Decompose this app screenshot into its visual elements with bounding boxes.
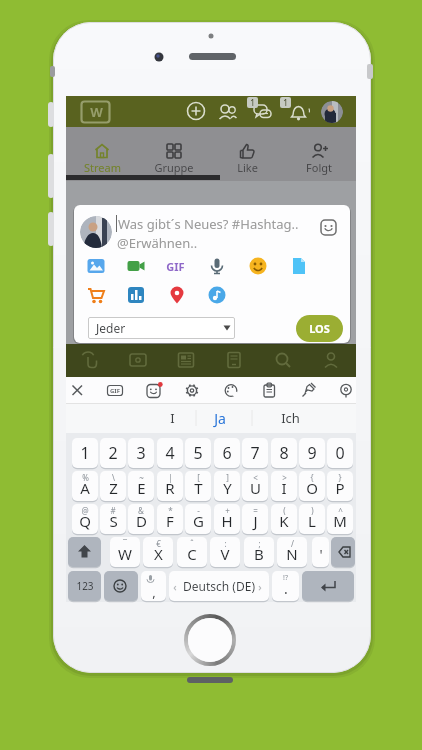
staticText: 0	[335, 442, 345, 464]
button[interactable]	[248, 256, 268, 276]
button[interactable]	[242, 504, 268, 534]
button[interactable]	[271, 438, 297, 468]
button[interactable]	[242, 471, 268, 501]
button[interactable]	[128, 438, 154, 468]
button[interactable]	[128, 504, 154, 534]
button[interactable]	[271, 471, 297, 501]
staticText: 5	[193, 442, 203, 464]
button[interactable]	[299, 471, 325, 501]
button[interactable]	[157, 438, 183, 468]
button[interactable]	[185, 438, 211, 468]
button[interactable]	[196, 403, 252, 433]
button[interactable]	[186, 101, 206, 121]
button[interactable]	[185, 615, 235, 665]
button[interactable]	[72, 504, 98, 534]
button[interactable]	[271, 504, 297, 534]
button[interactable]	[104, 571, 138, 601]
button[interactable]	[272, 571, 299, 601]
button[interactable]	[285, 127, 358, 181]
button[interactable]	[299, 438, 325, 468]
button[interactable]: LOS	[296, 315, 343, 342]
staticText: T	[194, 478, 203, 498]
button[interactable]	[336, 380, 356, 400]
button[interactable]	[327, 438, 353, 468]
staticText: P	[335, 478, 345, 498]
button[interactable]	[207, 256, 227, 276]
button[interactable]	[210, 537, 240, 567]
staticText: B	[254, 544, 264, 564]
button[interactable]	[214, 504, 240, 534]
button[interactable]	[139, 127, 212, 181]
button[interactable]	[214, 438, 240, 468]
button[interactable]	[321, 350, 341, 370]
button[interactable]	[207, 285, 227, 305]
staticText: +	[225, 505, 230, 516]
button[interactable]	[86, 256, 106, 276]
button[interactable]	[110, 537, 140, 567]
button[interactable]	[68, 571, 101, 601]
button[interactable]	[176, 350, 196, 370]
button[interactable]	[72, 438, 98, 468]
button[interactable]: GIF	[105, 380, 125, 400]
button[interactable]	[157, 504, 183, 534]
button[interactable]	[88, 317, 235, 339]
staticText: S	[109, 511, 118, 531]
button[interactable]	[80, 350, 100, 370]
button[interactable]	[299, 504, 325, 534]
button[interactable]	[126, 285, 146, 305]
button[interactable]	[289, 256, 309, 276]
button[interactable]	[182, 380, 202, 400]
button[interactable]	[185, 504, 211, 534]
staticText: 7	[250, 442, 260, 464]
staticText: GIF	[166, 259, 185, 274]
button[interactable]	[298, 380, 318, 400]
button[interactable]	[320, 219, 338, 237]
button[interactable]	[331, 537, 355, 567]
button[interactable]	[185, 471, 211, 501]
button[interactable]	[80, 216, 112, 248]
button[interactable]	[86, 285, 106, 305]
button[interactable]	[169, 571, 269, 601]
button[interactable]	[100, 438, 126, 468]
button[interactable]	[68, 537, 101, 567]
button[interactable]	[312, 537, 329, 567]
button[interactable]	[157, 471, 183, 501]
button[interactable]	[144, 380, 164, 400]
button[interactable]	[167, 285, 187, 305]
button[interactable]	[143, 537, 173, 567]
button[interactable]	[100, 504, 126, 534]
button[interactable]	[242, 438, 268, 468]
button[interactable]	[302, 571, 354, 601]
button[interactable]	[72, 471, 98, 501]
button[interactable]	[66, 127, 139, 181]
button[interactable]	[259, 380, 279, 400]
button[interactable]	[67, 380, 87, 400]
staticText: GIF	[110, 387, 120, 395]
button[interactable]	[327, 471, 353, 501]
button[interactable]	[321, 101, 343, 123]
button[interactable]: GIF	[167, 256, 187, 276]
button[interactable]	[132, 403, 196, 433]
button[interactable]	[126, 256, 146, 276]
button[interactable]	[218, 102, 238, 122]
button[interactable]	[244, 537, 274, 567]
button[interactable]: W	[80, 100, 112, 125]
button[interactable]	[251, 101, 273, 121]
button[interactable]	[214, 471, 240, 501]
button[interactable]	[177, 537, 207, 567]
staticText: }	[338, 472, 342, 483]
button[interactable]	[212, 127, 285, 181]
button[interactable]	[327, 504, 353, 534]
button[interactable]	[221, 380, 241, 400]
button[interactable]	[100, 471, 126, 501]
button[interactable]	[224, 350, 244, 370]
button[interactable]	[277, 537, 307, 567]
staticText: [	[197, 472, 200, 483]
button[interactable]	[273, 350, 293, 370]
staticText: G	[193, 511, 204, 531]
button[interactable]	[141, 571, 166, 601]
button[interactable]	[252, 403, 332, 433]
button[interactable]	[128, 471, 154, 501]
button[interactable]	[128, 350, 148, 370]
button[interactable]	[288, 101, 310, 121]
